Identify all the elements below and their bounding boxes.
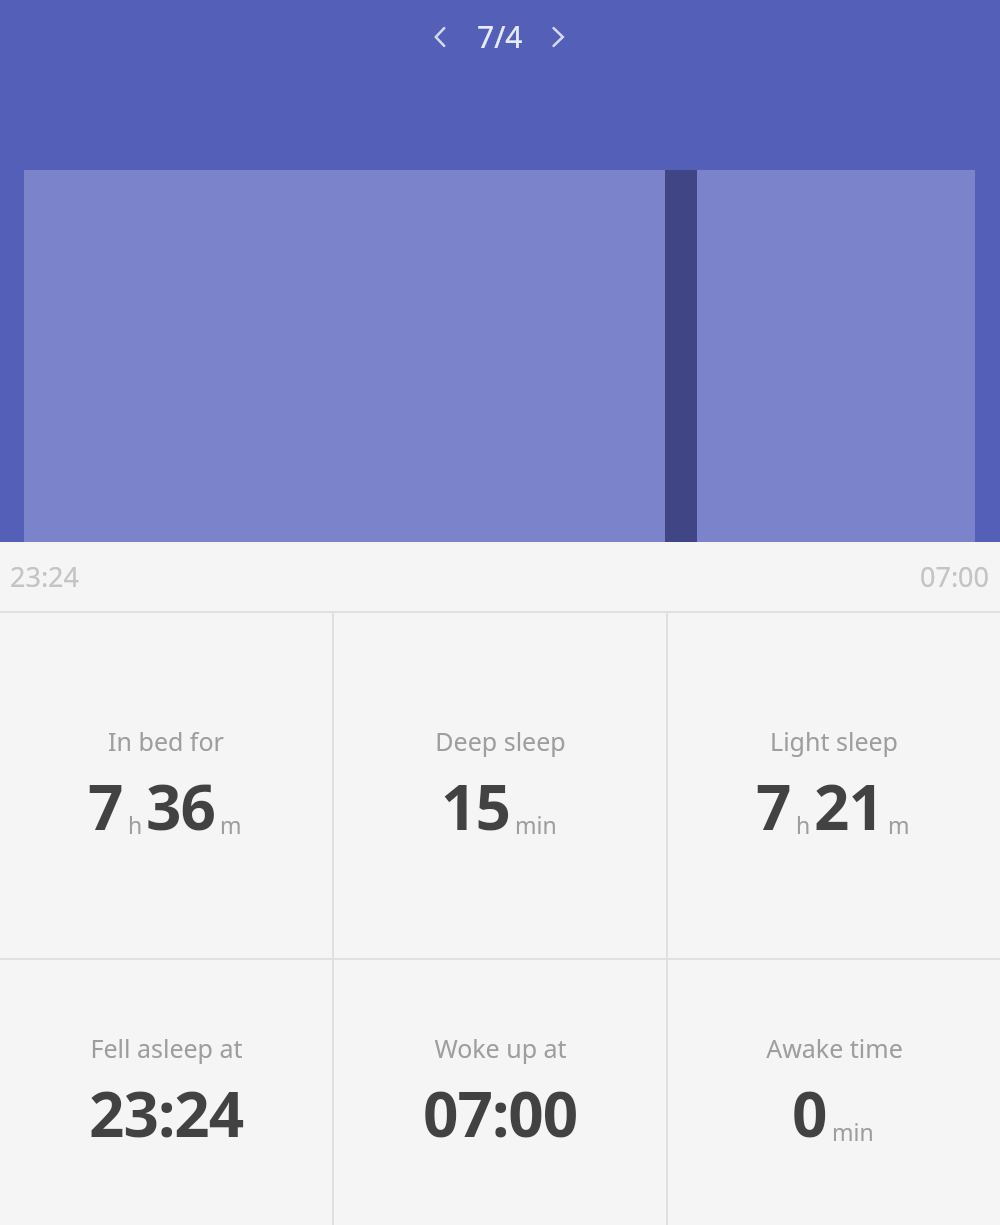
staticText: min (515, 809, 557, 840)
button[interactable]: Woke up at (334, 960, 666, 1225)
button[interactable]: Previous day (419, 14, 465, 60)
staticText: 36 (146, 764, 215, 848)
staticText: h (128, 809, 143, 840)
button[interactable]: In bed for (0, 613, 332, 958)
staticText: 07:00 (423, 1071, 578, 1155)
staticText: Woke up at (434, 1031, 567, 1065)
staticText: Light sleep (770, 724, 898, 758)
staticText: 0 (792, 1071, 827, 1155)
staticText: Awake time (766, 1031, 903, 1065)
staticText: 7 (756, 764, 791, 848)
staticText: 23:24 (89, 1071, 244, 1155)
staticText: min (832, 1116, 874, 1147)
button[interactable]: Fell asleep at (0, 960, 332, 1225)
staticText: 21 (814, 764, 883, 848)
staticText: 07:00 (920, 558, 990, 595)
staticText: 15 (441, 764, 510, 848)
staticText: m (888, 809, 910, 840)
staticText: 23:24 (10, 558, 80, 595)
button[interactable]: Next day (535, 14, 581, 60)
staticText: 7/4 (477, 16, 523, 57)
staticText: Fell asleep at (90, 1031, 243, 1065)
button[interactable]: Awake time (668, 960, 1000, 1225)
button[interactable]: Deep sleep (334, 613, 666, 958)
staticText: Deep sleep (435, 724, 566, 758)
staticText: h (796, 809, 811, 840)
staticText: In bed for (108, 724, 224, 758)
button[interactable] (0, 170, 1000, 542)
button[interactable]: 7/4 (471, 12, 529, 61)
staticText: 7 (88, 764, 123, 848)
button[interactable]: Light sleep (668, 613, 1000, 958)
staticText: m (220, 809, 242, 840)
